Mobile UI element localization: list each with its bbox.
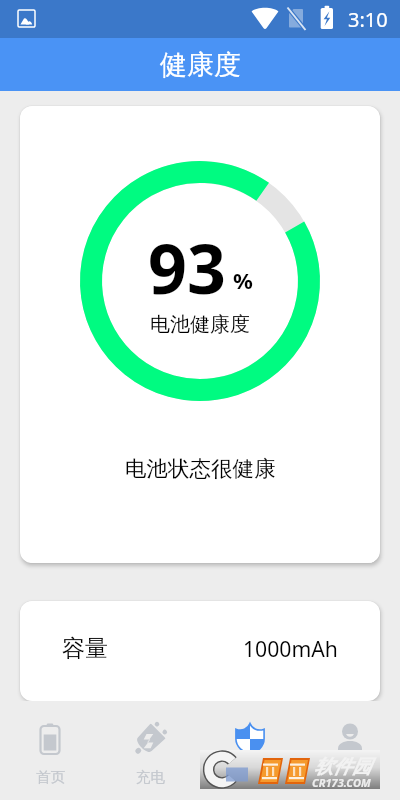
staticText: CR173.COM: [312, 775, 371, 790]
button[interactable]: 93: [20, 106, 380, 563]
staticText: 我的: [336, 768, 365, 786]
button[interactable]: 首页: [0, 701, 100, 800]
button[interactable]: 我的: [300, 701, 400, 800]
staticText: 3:10: [348, 6, 388, 33]
staticText: 93: [148, 221, 226, 314]
staticText: 健康: [236, 768, 265, 786]
staticText: 首页: [36, 768, 65, 786]
staticText: 健康度: [160, 48, 241, 82]
button[interactable]: 健康: [200, 701, 300, 800]
staticText: 电池健康度: [150, 312, 250, 337]
staticText: 电池状态很健康: [125, 455, 276, 482]
button[interactable]: 充电: [100, 701, 200, 800]
staticText: 充电: [136, 768, 165, 786]
staticText: %: [233, 265, 253, 295]
button[interactable]: 容量: [20, 601, 380, 701]
staticText: 1000mAh: [243, 634, 338, 663]
staticText: 容量: [62, 634, 108, 663]
staticText: 软件园: [314, 755, 371, 779]
